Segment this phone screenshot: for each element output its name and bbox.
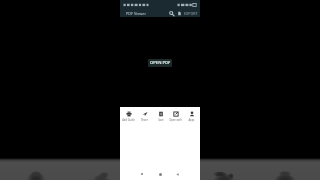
staticText: Apps [188, 118, 195, 122]
staticText: Save [158, 118, 164, 122]
button[interactable]: Apps [184, 111, 199, 122]
button[interactable]: Home [157, 171, 163, 177]
button[interactable]: Share [137, 111, 152, 122]
button[interactable]: Recents [139, 171, 145, 177]
button[interactable]: Bookmarks [175, 9, 183, 17]
staticText: Open with [169, 118, 182, 122]
staticText: Add Guide [122, 118, 135, 122]
button[interactable]: Add Guide [121, 111, 136, 122]
staticText: EXPORT [184, 11, 198, 16]
button[interactable]: OPEN PDF [148, 59, 172, 67]
button[interactable]: Back [174, 171, 180, 177]
button[interactable]: Save [153, 111, 168, 122]
button[interactable]: EXPORT [183, 11, 199, 16]
button[interactable]: Open with [168, 111, 183, 122]
staticText: PDF Viewer [126, 11, 147, 16]
staticText: Share [141, 118, 148, 122]
button[interactable]: Search [167, 9, 175, 17]
staticText: OPEN PDF [150, 60, 171, 66]
